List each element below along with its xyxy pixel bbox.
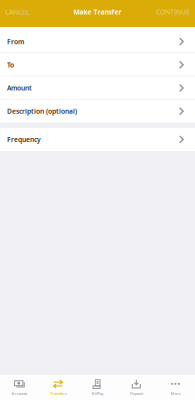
staticText: More <box>170 391 180 396</box>
staticText: CONTINUE <box>156 8 190 16</box>
button[interactable]: CONTINUE <box>156 3 195 21</box>
button[interactable]: Frequency <box>0 128 195 151</box>
button[interactable]: More <box>156 375 195 400</box>
button[interactable]: To <box>0 53 195 76</box>
staticText: Deposit <box>130 391 143 396</box>
button[interactable]: CANCEL <box>0 3 29 21</box>
staticText: From <box>7 37 24 46</box>
staticText: To <box>7 60 14 69</box>
button[interactable]: From <box>0 30 195 53</box>
button[interactable]: Accounts <box>0 375 39 400</box>
staticText: CANCEL <box>5 8 29 16</box>
button[interactable]: Amount <box>0 76 195 100</box>
staticText: Accounts <box>11 391 27 396</box>
staticText: Make Transfer <box>73 8 121 16</box>
button[interactable]: BillPay <box>78 375 117 400</box>
staticText: BillPay <box>91 391 103 396</box>
button[interactable]: Deposit <box>117 375 156 400</box>
button[interactable]: Description (optional) <box>0 100 195 123</box>
staticText: Amount <box>7 84 32 92</box>
staticText: Transfers <box>50 391 67 396</box>
staticText: Frequency <box>7 135 41 144</box>
staticText: Description (optional) <box>7 107 77 116</box>
button[interactable]: Transfers <box>39 375 78 400</box>
